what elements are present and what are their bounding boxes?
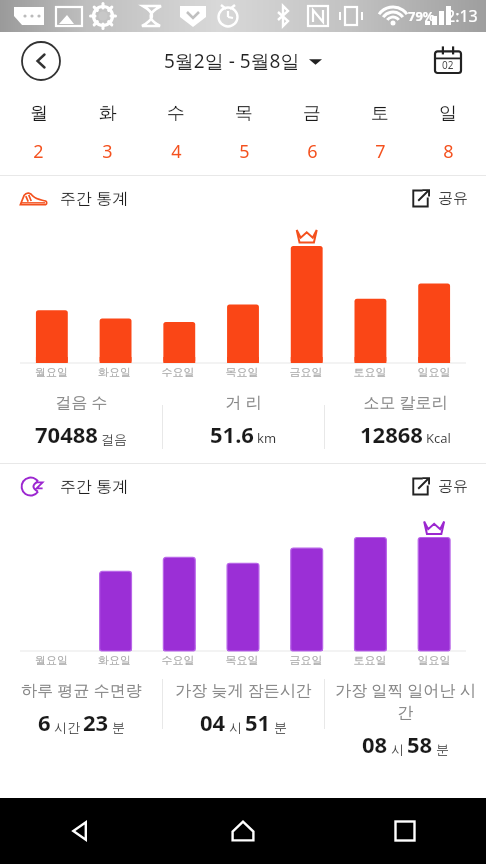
staticText: 거 리 bbox=[225, 391, 262, 413]
button[interactable]: 하루 평균 수면량 bbox=[0, 679, 162, 759]
button[interactable]: 가장 늦게 잠든시간 bbox=[163, 679, 324, 759]
button[interactable]: 거 리 bbox=[163, 391, 324, 463]
staticText: 2 bbox=[33, 139, 44, 164]
button[interactable]: 월 bbox=[4, 90, 73, 175]
button[interactable]: 목 bbox=[210, 90, 278, 175]
staticText: 2:13 bbox=[446, 5, 478, 27]
staticText: 23 bbox=[83, 707, 109, 737]
staticText: 걸음 수 bbox=[55, 391, 108, 413]
staticText: 목 bbox=[235, 102, 253, 125]
staticText: 가장 늦게 잠든시간 bbox=[175, 679, 312, 701]
staticText: 6 bbox=[38, 707, 51, 737]
staticText: 8 bbox=[443, 139, 454, 164]
staticText: 분 bbox=[274, 719, 287, 735]
staticText: 목요일 bbox=[210, 653, 274, 667]
staticText: 시간 bbox=[54, 719, 80, 735]
staticText: 화요일 bbox=[83, 365, 146, 379]
other: Share bbox=[411, 477, 430, 496]
button[interactable]: 걸음 수 bbox=[0, 391, 162, 463]
staticText: 수요일 bbox=[146, 365, 210, 379]
staticText: 08 bbox=[362, 729, 388, 759]
staticText: 공유 bbox=[438, 477, 468, 496]
button[interactable]: 일 bbox=[414, 90, 482, 175]
button[interactable]: Share bbox=[411, 189, 468, 208]
staticText: 70488 bbox=[35, 419, 98, 449]
staticText: km bbox=[257, 429, 277, 447]
staticText: 분 bbox=[436, 741, 449, 757]
staticText: 하루 평균 수면량 bbox=[21, 679, 142, 701]
staticText: Kcal bbox=[426, 429, 451, 447]
button[interactable]: 주간 통계 bbox=[18, 183, 129, 213]
staticText: 시 bbox=[229, 719, 242, 735]
button[interactable]: Recents bbox=[324, 798, 486, 864]
staticText: 목요일 bbox=[210, 365, 274, 379]
staticText: 수 bbox=[167, 102, 185, 125]
staticText: 주간 통계 bbox=[60, 187, 129, 209]
button[interactable]: 가장 일찍 일어난 시간 bbox=[325, 679, 486, 759]
staticText: 일요일 bbox=[402, 365, 466, 379]
staticText: 월요일 bbox=[20, 365, 83, 379]
staticText: 4 bbox=[171, 139, 182, 164]
staticText: 화 bbox=[99, 102, 117, 125]
staticText: 일요일 bbox=[402, 653, 466, 667]
button[interactable]: Back bbox=[20, 40, 62, 82]
staticText: 7 bbox=[375, 139, 386, 164]
staticText: 51.6 bbox=[210, 419, 254, 449]
staticText: 5 bbox=[239, 139, 250, 164]
other: Share bbox=[411, 189, 430, 208]
button[interactable]: Home bbox=[162, 798, 324, 864]
staticText: 주간 통계 bbox=[60, 475, 129, 497]
staticText: 51 bbox=[245, 707, 271, 737]
button[interactable]: 5월2일 - 5월8일 bbox=[164, 48, 322, 74]
button[interactable]: Share bbox=[411, 477, 468, 496]
staticText: 일 bbox=[439, 102, 457, 125]
button[interactable]: 수 bbox=[142, 90, 210, 175]
button[interactable]: 토 bbox=[346, 90, 414, 175]
staticText: 걸음 bbox=[101, 431, 127, 447]
staticText: 79% bbox=[408, 7, 435, 25]
button[interactable]: 소모 칼로리 bbox=[325, 391, 486, 463]
staticText: 공유 bbox=[438, 189, 468, 208]
button[interactable]: Calendar bbox=[428, 41, 468, 81]
staticText: 6 bbox=[307, 139, 318, 164]
staticText: 소모 칼로리 bbox=[363, 391, 448, 413]
staticText: 3 bbox=[102, 139, 113, 164]
staticText: 02 bbox=[442, 58, 454, 72]
staticText: 월요일 bbox=[20, 653, 83, 667]
staticText: 금요일 bbox=[274, 653, 338, 667]
staticText: 금요일 bbox=[274, 365, 338, 379]
staticText: 5월2일 - 5월8일 bbox=[164, 48, 300, 74]
staticText: 12868 bbox=[360, 419, 423, 449]
button[interactable]: 주간 통계 bbox=[18, 471, 129, 501]
staticText: 04 bbox=[200, 707, 226, 737]
staticText: 분 bbox=[112, 719, 125, 735]
staticText: 토요일 bbox=[338, 653, 402, 667]
staticText: 수요일 bbox=[146, 653, 210, 667]
staticText: 시 bbox=[391, 741, 404, 757]
staticText: 월 bbox=[30, 102, 48, 125]
staticText: 화요일 bbox=[83, 653, 146, 667]
button[interactable]: 금 bbox=[278, 90, 346, 175]
staticText: 토요일 bbox=[338, 365, 402, 379]
staticText: 58 bbox=[407, 729, 433, 759]
button[interactable]: Back bbox=[0, 798, 162, 864]
staticText: 금 bbox=[303, 102, 321, 125]
staticText: 가장 일찍 일어난 시간 bbox=[329, 679, 482, 723]
staticText: 토 bbox=[371, 102, 389, 125]
button[interactable]: 화 bbox=[73, 90, 142, 175]
